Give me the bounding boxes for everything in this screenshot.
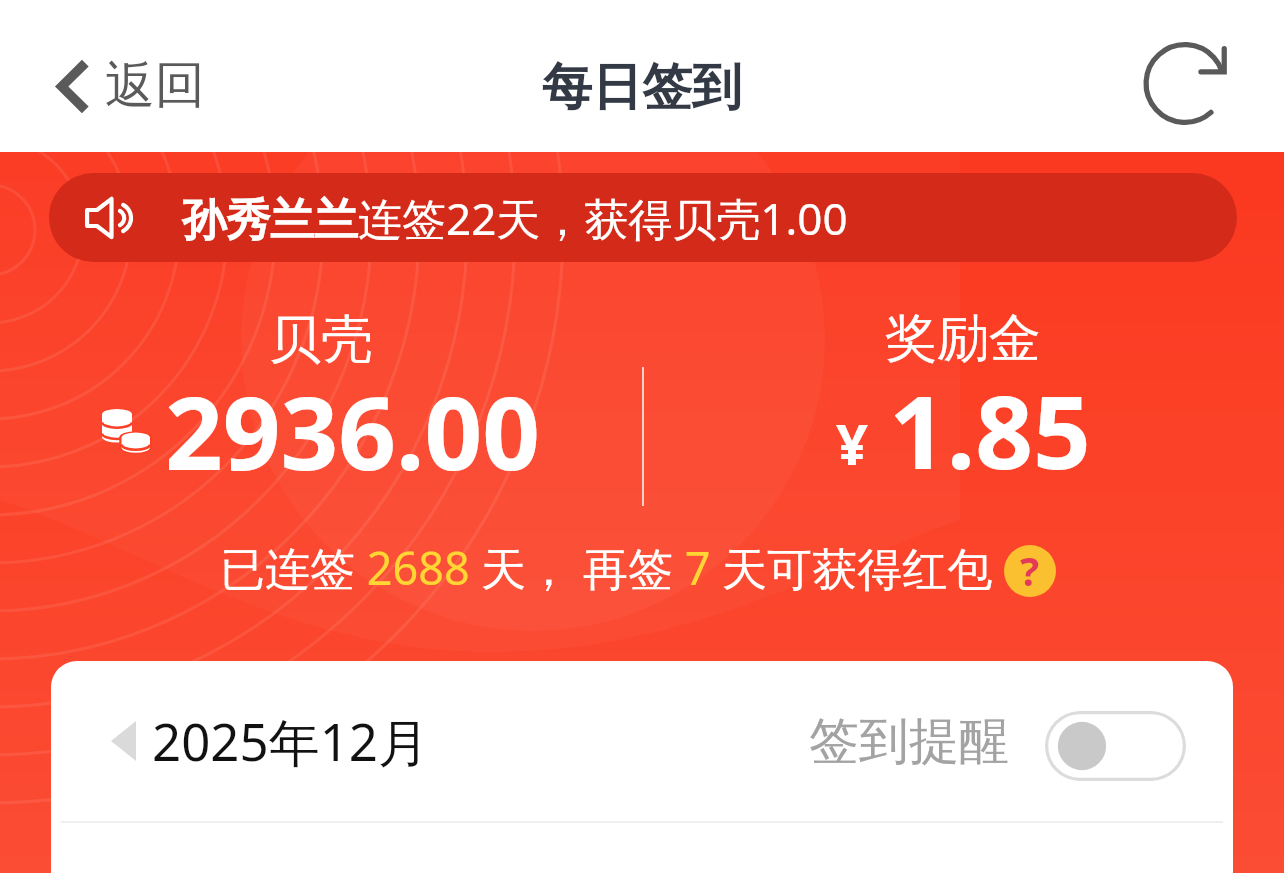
staticText: 贝壳 bbox=[269, 307, 373, 373]
button[interactable]: Help bbox=[1004, 545, 1056, 597]
button[interactable]: 返回 bbox=[48, 43, 215, 130]
staticText: 返回 bbox=[105, 54, 205, 117]
button[interactable]: Previous month bbox=[107, 709, 140, 773]
button[interactable]: Check-in reminder toggle bbox=[1045, 711, 1186, 781]
staticText: 2936.00 bbox=[165, 362, 541, 500]
staticText: 1.85 bbox=[889, 361, 1091, 499]
button[interactable]: Refresh bbox=[1139, 33, 1240, 134]
staticText: ¥ bbox=[836, 405, 869, 481]
staticText: 签到提醒 bbox=[809, 710, 1009, 773]
staticText: 2025年12月 bbox=[152, 706, 430, 776]
staticText: ? bbox=[1020, 545, 1040, 595]
button[interactable]: 孙秀兰兰连签22天，获得贝壳1.00 bbox=[49, 173, 1237, 262]
staticText: 孙秀兰兰连签22天，获得贝壳1.00 bbox=[182, 188, 848, 248]
staticText: 奖励金 bbox=[885, 306, 1041, 372]
staticText: 每日签到 bbox=[542, 56, 742, 119]
staticText: 已连签 2688 天， 再签 7 天可获得红包 bbox=[220, 537, 1004, 598]
